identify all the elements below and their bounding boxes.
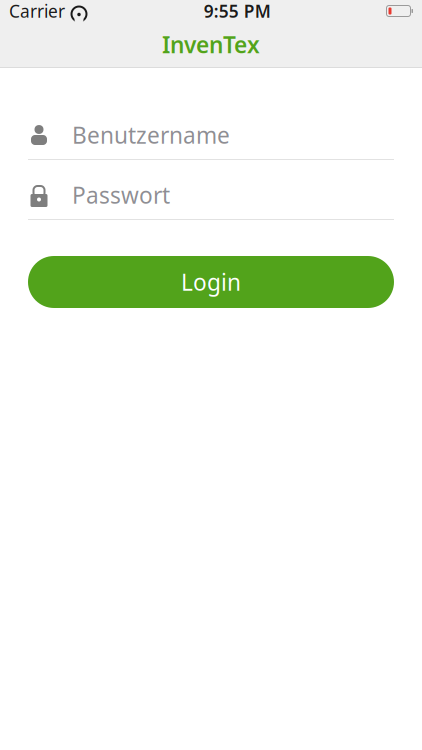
staticText: 9:55 PM xyxy=(204,0,271,22)
button[interactable]: Benutzername xyxy=(28,120,394,160)
staticText: Passwort xyxy=(72,180,170,210)
staticText: Login xyxy=(181,267,241,297)
staticText: Carrier xyxy=(9,0,65,22)
staticText: Benutzername xyxy=(72,120,230,150)
button[interactable]: Login xyxy=(28,256,394,308)
staticText: InvenTex xyxy=(162,29,260,59)
button[interactable]: Passwort xyxy=(28,180,394,220)
